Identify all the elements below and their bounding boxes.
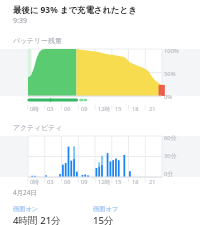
staticText: バッテリー残量 — [13, 36, 62, 45]
staticText: 12時 — [98, 178, 111, 186]
staticText: 09 — [81, 178, 88, 186]
staticText: 03 — [47, 105, 54, 113]
button[interactable]: 画面オフ — [93, 205, 173, 225]
staticText: 15 — [115, 105, 122, 113]
other: アクティビティグラフ — [0, 134, 200, 178]
button[interactable]: 最後に 93% まで充電されたとき — [0, 0, 200, 29]
staticText: 15 — [115, 178, 122, 186]
staticText: 最後に 93% まで充電されたとき — [13, 4, 137, 15]
staticText: 0分 — [164, 170, 174, 178]
staticText: アクティビティ — [13, 123, 63, 132]
staticText: 0時 — [30, 105, 39, 113]
staticText: 06 — [64, 105, 71, 113]
staticText: 0時 — [30, 178, 39, 186]
other: バッテリー残量グラフ — [0, 47, 200, 105]
staticText: 50% — [164, 70, 176, 78]
staticText: 18 — [132, 105, 139, 113]
staticText: 15分 — [93, 214, 114, 225]
staticText: 21 — [149, 178, 156, 186]
staticText: 60分 — [164, 134, 177, 142]
staticText: 画面オフ — [93, 205, 119, 213]
staticText: 4時間 21分 — [13, 214, 61, 225]
staticText: 09 — [81, 105, 88, 113]
button[interactable]: 画面オン — [13, 205, 93, 225]
staticText: 06 — [64, 178, 71, 186]
staticText: 30分 — [164, 152, 177, 160]
staticText: 03 — [47, 178, 54, 186]
staticText: 4月24日 — [13, 188, 37, 197]
staticText: 0% — [164, 93, 173, 101]
staticText: 9:39 — [13, 16, 27, 26]
staticText: 18 — [132, 178, 139, 186]
staticText: 画面オン — [13, 205, 39, 213]
staticText: 12時 — [98, 105, 111, 113]
staticText: 21 — [149, 105, 156, 113]
staticText: 100% — [164, 47, 179, 55]
